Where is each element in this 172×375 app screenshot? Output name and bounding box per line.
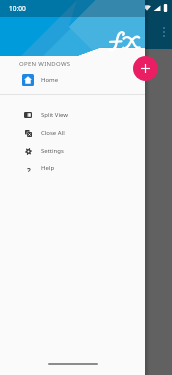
button[interactable]: ? (0, 159, 145, 177)
staticText: OPEN WINDOWS (19, 60, 71, 68)
button[interactable]: Home (0, 71, 145, 89)
button[interactable]: Add (133, 56, 158, 81)
button[interactable]: Split View (0, 106, 145, 124)
staticText: Help (41, 164, 55, 172)
button[interactable]: More options (161, 26, 167, 38)
staticText: ? (27, 165, 31, 172)
staticText: Split View (41, 111, 68, 119)
staticText: Close All (41, 129, 65, 137)
staticText: Settings (41, 147, 64, 155)
button[interactable]: Close All (0, 124, 145, 142)
button[interactable]: Settings (0, 142, 145, 160)
staticText: 10:00 (9, 4, 26, 13)
staticText: Home (41, 76, 59, 84)
